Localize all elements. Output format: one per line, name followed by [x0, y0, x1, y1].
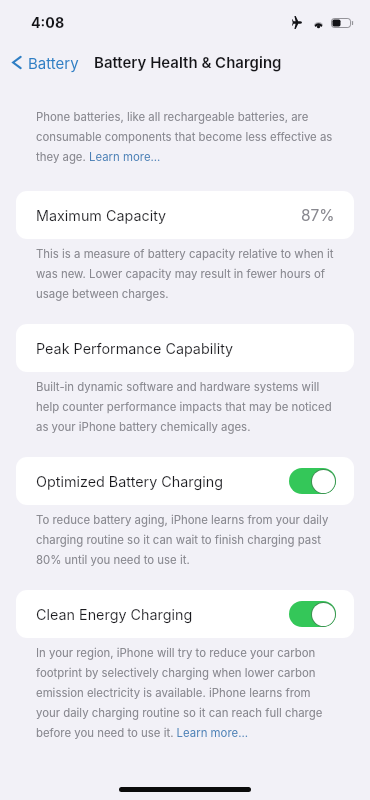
staticText: In your region, iPhone will try to reduc…: [36, 641, 336, 741]
staticText: Built-in dynamic software and hardware s…: [36, 375, 336, 435]
button[interactable]: Maximum Capacity: [16, 191, 354, 239]
staticText: 4:08: [31, 14, 65, 31]
staticText: To reduce battery aging, iPhone learns f…: [36, 508, 336, 568]
staticText: Optimized Battery Charging: [36, 473, 223, 490]
staticText: This is a measure of battery capacity re…: [36, 242, 336, 302]
staticText: Peak Performance Capability: [36, 340, 234, 357]
button[interactable]: Optimized Battery Charging: [289, 468, 336, 494]
staticText: Phone batteries, like all rechargeable b…: [36, 105, 336, 165]
button[interactable]: Clean Energy Charging: [16, 590, 354, 638]
button[interactable]: Battery: [10, 53, 79, 72]
staticText: Maximum Capacity: [36, 207, 167, 224]
button[interactable]: Peak Performance Capability: [16, 324, 354, 372]
button[interactable]: Optimized Battery Charging: [16, 457, 354, 505]
staticText: 87%: [301, 206, 335, 225]
staticText: Clean Energy Charging: [36, 606, 193, 623]
staticText: Battery Health & Charging: [94, 53, 282, 71]
button[interactable]: Clean Energy Charging: [289, 601, 336, 627]
staticText: Battery: [28, 54, 79, 72]
